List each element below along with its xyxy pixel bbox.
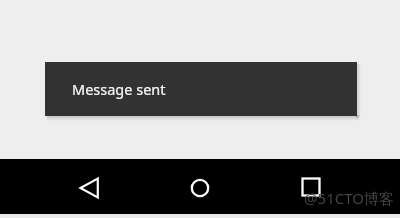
button[interactable]: Home: [180, 168, 220, 208]
button[interactable]: Back: [70, 168, 110, 208]
staticText: Message sent: [72, 79, 166, 99]
button[interactable]: Message sent: [45, 62, 357, 116]
staticText: @51CTO博客: [304, 188, 394, 208]
button[interactable]: Recent apps: [291, 167, 331, 207]
